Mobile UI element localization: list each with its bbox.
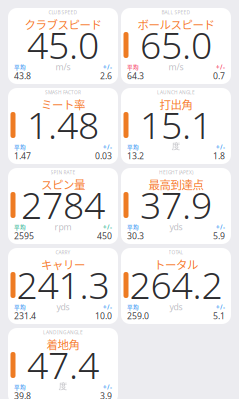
staticText: キャリー (41, 256, 85, 273)
staticText: CARRY (55, 249, 70, 255)
staticText: ミート率 (41, 96, 85, 113)
staticText: 度 (58, 381, 67, 392)
staticText: HEIGHT (APEX) (159, 169, 193, 175)
button[interactable]: SPIN RATE (8, 168, 118, 244)
staticText: 平均 (14, 223, 26, 231)
staticText: yds (56, 301, 69, 313)
staticText: 30.3 (127, 230, 144, 242)
button[interactable]: LAUNCH ANGLE (121, 88, 231, 164)
staticText: 2784 (21, 179, 105, 230)
staticText: 1.48 (27, 99, 99, 150)
staticText: 264.2 (129, 259, 222, 310)
staticText: 平均 (14, 143, 26, 151)
staticText: CLUB SPEED (48, 9, 77, 15)
staticText: 450 (97, 230, 112, 242)
staticText: 231.4 (14, 310, 36, 322)
staticText: 5.9 (213, 230, 225, 242)
staticText: BALL SPEED (161, 9, 190, 15)
staticText: LANDING ANGLE (43, 329, 83, 335)
staticText: 15.1 (140, 99, 212, 150)
staticText: 0.7 (213, 70, 225, 82)
staticText: 10.0 (95, 310, 112, 322)
staticText: 13.2 (127, 150, 144, 162)
staticText: +/- (103, 223, 112, 231)
staticText: SPIN RATE (50, 169, 75, 175)
staticText: SMASH FACTOR (45, 89, 81, 95)
staticText: +/- (216, 223, 225, 231)
staticText: yds (169, 221, 182, 233)
staticText: 平均 (14, 303, 26, 311)
staticText: 平均 (127, 223, 139, 231)
staticText: yds (169, 301, 182, 313)
staticText: 259.0 (127, 310, 149, 322)
staticText: 64.3 (127, 70, 144, 82)
button[interactable]: HEIGHT (APEX) (121, 168, 231, 244)
staticText: +/- (216, 303, 225, 311)
staticText: +/- (216, 143, 225, 151)
staticText: 45.0 (27, 19, 99, 70)
staticText: 65.0 (140, 19, 212, 70)
staticText: スピン量 (41, 176, 85, 193)
staticText: +/- (103, 303, 112, 311)
staticText: m/s (55, 61, 70, 73)
button[interactable]: BALL SPEED (121, 8, 231, 84)
staticText: 0.03 (95, 150, 112, 162)
staticText: 平均 (127, 303, 139, 311)
staticText: +/- (103, 143, 112, 151)
staticText: 平均 (127, 63, 139, 71)
button[interactable]: CLUB SPEED (8, 8, 118, 84)
staticText: 平均 (14, 63, 26, 71)
button[interactable]: CARRY (8, 248, 118, 324)
staticText: 打出角 (159, 96, 192, 113)
staticText: 5.1 (213, 310, 225, 322)
staticText: +/- (216, 63, 225, 71)
staticText: 3.9 (100, 390, 112, 399)
staticText: 47.4 (27, 339, 99, 390)
staticText: 最高到達点 (148, 176, 203, 193)
staticText: 37.9 (140, 179, 212, 230)
staticText: 1.8 (213, 150, 225, 162)
staticText: 平均 (127, 143, 139, 151)
button[interactable]: LANDING ANGLE (8, 328, 118, 399)
staticText: +/- (103, 383, 112, 391)
staticText: 1.47 (14, 150, 31, 162)
staticText: トータル (154, 256, 198, 273)
staticText: 着地角 (46, 336, 79, 353)
staticText: 平均 (14, 383, 26, 391)
staticText: 2595 (14, 230, 34, 242)
staticText: ボールスピード (137, 16, 214, 33)
staticText: m/s (168, 61, 183, 73)
staticText: 39.8 (14, 390, 31, 399)
staticText: LAUNCH ANGLE (157, 89, 195, 95)
staticText: クラブスピード (24, 16, 101, 33)
button[interactable]: SMASH FACTOR (8, 88, 118, 164)
staticText: rpm (54, 221, 71, 233)
staticText: 2.6 (100, 70, 112, 82)
staticText: +/- (103, 63, 112, 71)
button[interactable]: TOTAL (121, 248, 231, 324)
staticText: 度 (171, 141, 180, 152)
staticText: 43.8 (14, 70, 31, 82)
staticText: TOTAL (168, 249, 183, 255)
staticText: 241.3 (16, 259, 109, 310)
